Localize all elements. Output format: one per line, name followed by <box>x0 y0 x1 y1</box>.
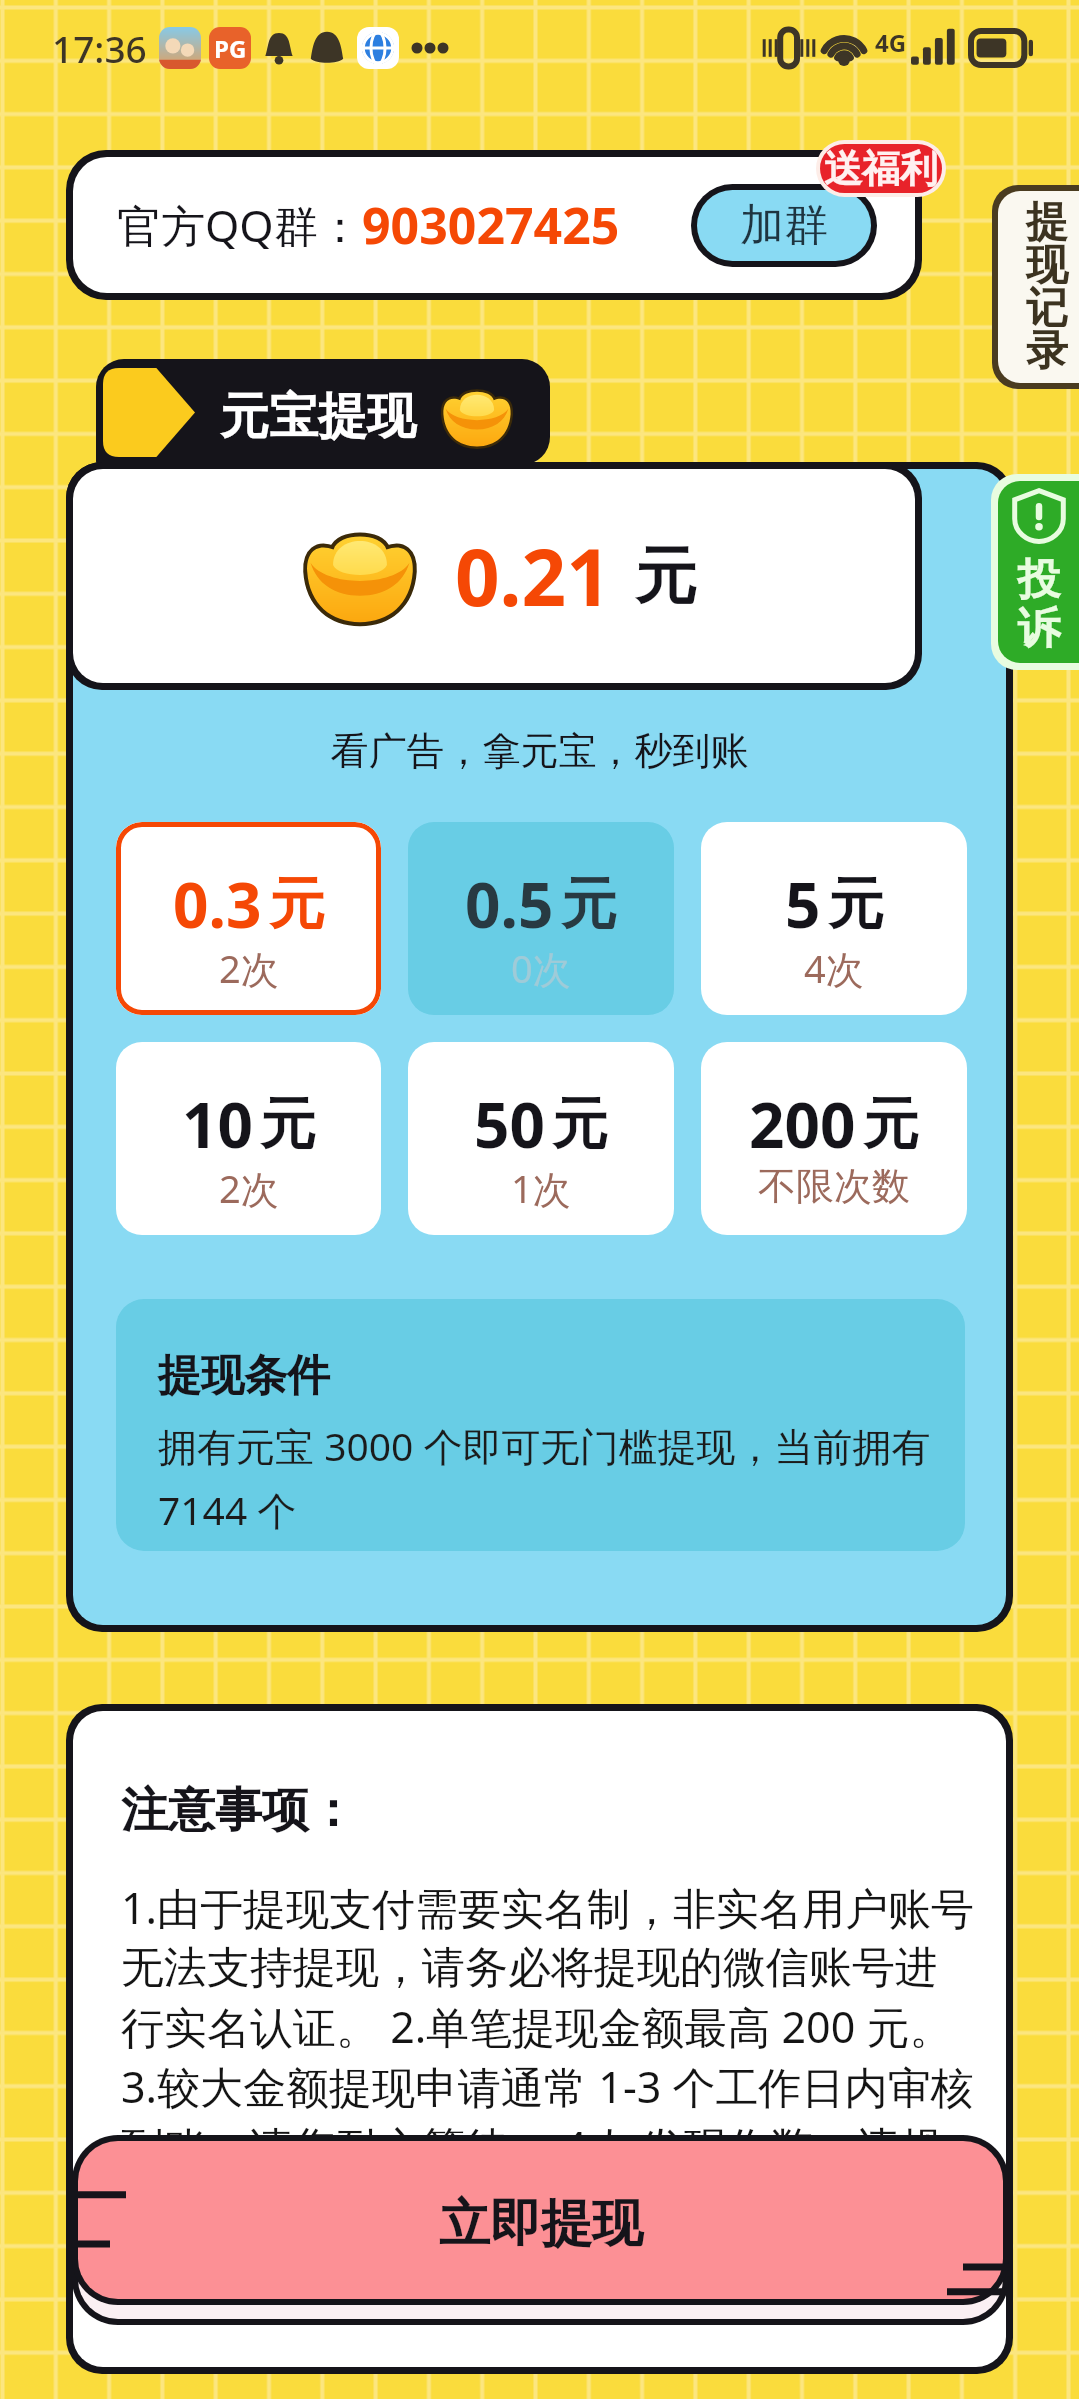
button[interactable]: 50 <box>408 1042 674 1235</box>
staticText: 5 <box>785 862 821 946</box>
button[interactable]: 0.5 <box>408 822 674 1015</box>
staticText: 加群 <box>740 198 828 253</box>
staticText: 200 <box>749 1082 856 1166</box>
button[interactable]: 投诉 <box>998 481 1079 663</box>
staticText: 注意事项： <box>121 1781 356 1840</box>
staticText: 17:36 <box>52 23 147 73</box>
button[interactable]: 200 <box>701 1042 967 1235</box>
staticText: 拥有元宝 3000 个即可无门槛提现，当前拥有 7144 个 <box>158 1419 943 1536</box>
staticText: 0.3 <box>173 862 262 946</box>
staticText: 0次 <box>511 942 571 994</box>
staticText: 0.21 <box>455 523 611 629</box>
staticText: 元 <box>260 1089 316 1160</box>
staticText: 2次 <box>219 1162 279 1214</box>
staticText: 元 <box>863 1089 919 1160</box>
staticText: 看广告，拿元宝，秒到账 <box>73 727 1006 775</box>
staticText: 元 <box>561 869 617 940</box>
button[interactable]: 0.3 <box>116 822 381 1015</box>
staticText: 官方QQ群： <box>117 195 362 255</box>
staticText: 立即提现 <box>439 2192 643 2256</box>
staticText: 4次 <box>804 942 864 994</box>
button[interactable]: 官方QQ群： <box>73 157 915 293</box>
staticText: 50 <box>474 1082 545 1166</box>
staticText: 不限次数 <box>758 1162 910 1210</box>
button[interactable]: 送福利 <box>820 144 942 193</box>
staticText: 4G <box>875 26 907 59</box>
staticText: 1次 <box>511 1162 571 1214</box>
staticText: 元宝提现 <box>220 386 416 448</box>
staticText: 903027425 <box>362 191 620 259</box>
staticText: 元 <box>635 537 697 615</box>
staticText: 元 <box>269 869 325 940</box>
button[interactable]: 提现记录 <box>998 191 1079 383</box>
staticText: 投诉 <box>1017 553 1061 656</box>
staticText: PG <box>214 32 247 65</box>
staticText: 提现记录 <box>1026 196 1060 378</box>
staticText: 10 <box>182 1082 253 1166</box>
button[interactable]: 立即提现 <box>78 2141 1003 2299</box>
button[interactable]: 5 <box>701 822 967 1015</box>
button[interactable]: 10 <box>116 1042 381 1235</box>
staticText: 元 <box>828 869 884 940</box>
staticText: 1.由于提现支付需要实名制，非实名用户账号无法支持提现，请务必将提现的微信账号进… <box>121 1878 976 2233</box>
staticText: 送福利 <box>824 145 938 193</box>
staticText: 2次 <box>219 942 279 994</box>
staticText: 0.5 <box>465 862 554 946</box>
staticText: 提现条件 <box>158 1349 330 1403</box>
staticText: 元 <box>552 1089 608 1160</box>
button[interactable]: 加群 <box>697 190 871 261</box>
